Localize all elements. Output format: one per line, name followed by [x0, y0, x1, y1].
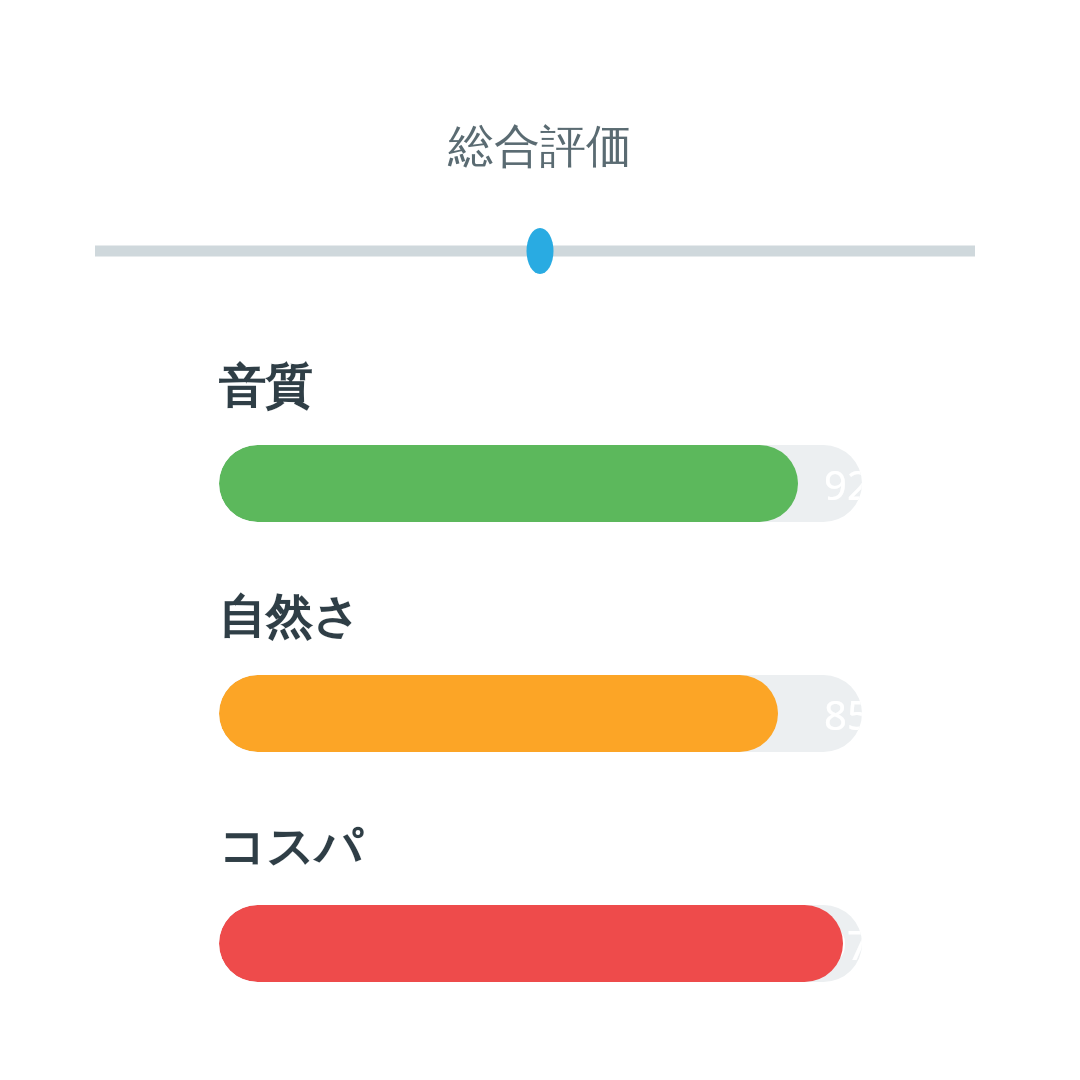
staticText: 85 — [824, 687, 862, 741]
staticText: 総合評価 — [0, 118, 1080, 176]
button[interactable]: 92 — [219, 445, 862, 522]
staticText: 音質 — [218, 358, 312, 417]
button[interactable]: 97 — [219, 905, 862, 982]
button[interactable]: 音質 — [218, 358, 312, 417]
staticText: 自然さ — [218, 588, 361, 647]
button[interactable]: 総合評価スライダー — [95, 225, 975, 277]
button[interactable]: 85 — [219, 675, 862, 752]
staticText: コスパ — [218, 818, 363, 877]
button[interactable]: コスパ — [218, 818, 363, 877]
button[interactable]: 自然さ — [218, 588, 361, 647]
staticText: 92 — [824, 457, 862, 511]
staticText: 97 — [824, 917, 862, 971]
